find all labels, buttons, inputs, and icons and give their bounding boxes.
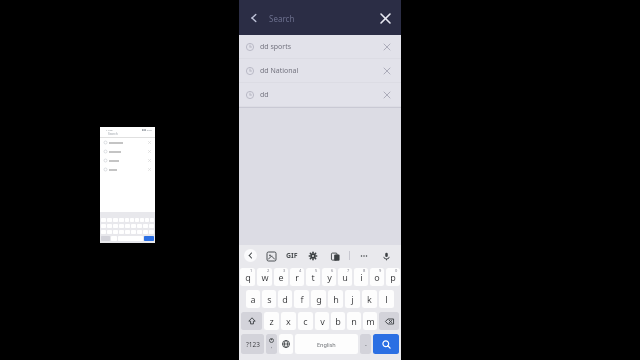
staticText: dd National xyxy=(260,66,380,76)
button[interactable]: Backspace xyxy=(379,312,399,330)
button[interactable]: Back xyxy=(245,9,263,27)
staticText: m xyxy=(366,315,375,327)
staticText: p xyxy=(390,271,396,283)
staticText: . xyxy=(365,339,367,349)
button[interactable]: i xyxy=(354,268,368,286)
button[interactable]: g xyxy=(311,290,326,308)
button[interactable]: h xyxy=(328,290,343,308)
button[interactable]: Remove dd sports xyxy=(380,40,394,54)
staticText: k xyxy=(367,293,372,305)
button[interactable]: c xyxy=(298,312,313,330)
button[interactable]: p xyxy=(386,268,400,286)
staticText: English xyxy=(317,341,336,348)
button[interactable]: q xyxy=(240,268,255,286)
staticText: 9 xyxy=(379,268,382,273)
staticText: w xyxy=(261,271,269,283)
button[interactable]: dd xyxy=(239,83,401,106)
staticText: 7 xyxy=(347,268,350,273)
button[interactable]: Clipboard xyxy=(328,249,342,263)
button[interactable]: dd National xyxy=(239,59,401,82)
staticText: g xyxy=(316,293,322,305)
button[interactable]: r xyxy=(290,268,304,286)
button[interactable]: dd sports xyxy=(239,35,401,58)
button[interactable]: Comma xyxy=(266,334,277,354)
staticText: e xyxy=(278,271,284,283)
staticText: h xyxy=(333,293,339,305)
staticText: 4 xyxy=(299,268,302,273)
staticText: dd xyxy=(260,90,380,100)
staticText: s xyxy=(267,293,272,305)
staticText: o xyxy=(374,271,380,283)
staticText: y xyxy=(327,271,332,283)
button[interactable]: v xyxy=(315,312,329,330)
button[interactable]: t xyxy=(306,268,320,286)
staticText: ▮▮▮ 43% xyxy=(142,128,152,131)
button[interactable]: o xyxy=(370,268,384,286)
button[interactable]: f xyxy=(294,290,309,308)
staticText: 0 xyxy=(395,268,398,273)
staticText: j xyxy=(351,293,354,305)
button[interactable]: u xyxy=(338,268,352,286)
staticText: d xyxy=(282,293,288,305)
button[interactable]: z xyxy=(264,312,279,330)
staticText: 1 xyxy=(250,268,253,273)
button[interactable]: s xyxy=(262,290,276,308)
staticText: q xyxy=(245,271,251,283)
staticText: t xyxy=(311,271,315,283)
staticText: 6 xyxy=(331,268,334,273)
button[interactable]: Period xyxy=(360,334,371,354)
staticText: , xyxy=(271,343,273,350)
staticText: u xyxy=(342,271,348,283)
button[interactable]: m xyxy=(363,312,377,330)
button[interactable]: k xyxy=(362,290,377,308)
button[interactable]: d xyxy=(278,290,292,308)
staticText: l xyxy=(385,293,388,305)
staticText: 2 xyxy=(267,268,270,273)
button[interactable]: GIF xyxy=(286,251,298,261)
staticText: 8 xyxy=(363,268,366,273)
button[interactable]: Search xyxy=(373,334,399,354)
staticText: z xyxy=(269,315,274,327)
button[interactable]: Shift xyxy=(241,312,262,330)
button[interactable]: x xyxy=(281,312,296,330)
staticText: f xyxy=(300,293,304,305)
staticText: c xyxy=(303,315,308,327)
button[interactable]: w xyxy=(257,268,272,286)
staticText: Search xyxy=(108,132,118,136)
button[interactable]: Voice input xyxy=(379,249,393,263)
button[interactable]: English xyxy=(295,334,358,354)
button[interactable]: l xyxy=(379,290,394,308)
button[interactable]: a xyxy=(246,290,260,308)
button[interactable]: Settings xyxy=(306,249,320,263)
button[interactable]: j xyxy=(345,290,360,308)
staticText: b xyxy=(335,315,341,327)
staticText: GIF xyxy=(286,251,298,261)
staticText: r xyxy=(295,271,299,283)
staticText: n xyxy=(351,315,357,327)
button[interactable]: Back xyxy=(244,249,257,262)
button[interactable]: Remove dd xyxy=(380,88,394,102)
button[interactable]: Stickers xyxy=(264,249,278,263)
staticText: v xyxy=(320,315,325,327)
button[interactable]: e xyxy=(274,268,288,286)
button[interactable]: Search xyxy=(269,7,375,29)
staticText: a xyxy=(250,293,256,305)
button[interactable]: y xyxy=(322,268,336,286)
button[interactable]: Remove dd National xyxy=(380,64,394,78)
staticText: i xyxy=(360,271,363,283)
staticText: x xyxy=(286,315,291,327)
staticText: Search xyxy=(269,13,295,24)
button[interactable]: Close xyxy=(375,8,395,28)
staticText: ?123 xyxy=(246,340,260,349)
staticText: dd sports xyxy=(260,42,380,52)
staticText: 3 xyxy=(283,268,286,273)
button[interactable]: ?123 xyxy=(241,334,264,354)
button[interactable]: More xyxy=(357,249,371,263)
staticText: 5 xyxy=(315,268,318,273)
button[interactable]: b xyxy=(331,312,345,330)
button[interactable]: n xyxy=(347,312,361,330)
staticText: 11:48 xyxy=(106,128,113,131)
button[interactable]: Change language xyxy=(279,334,293,354)
